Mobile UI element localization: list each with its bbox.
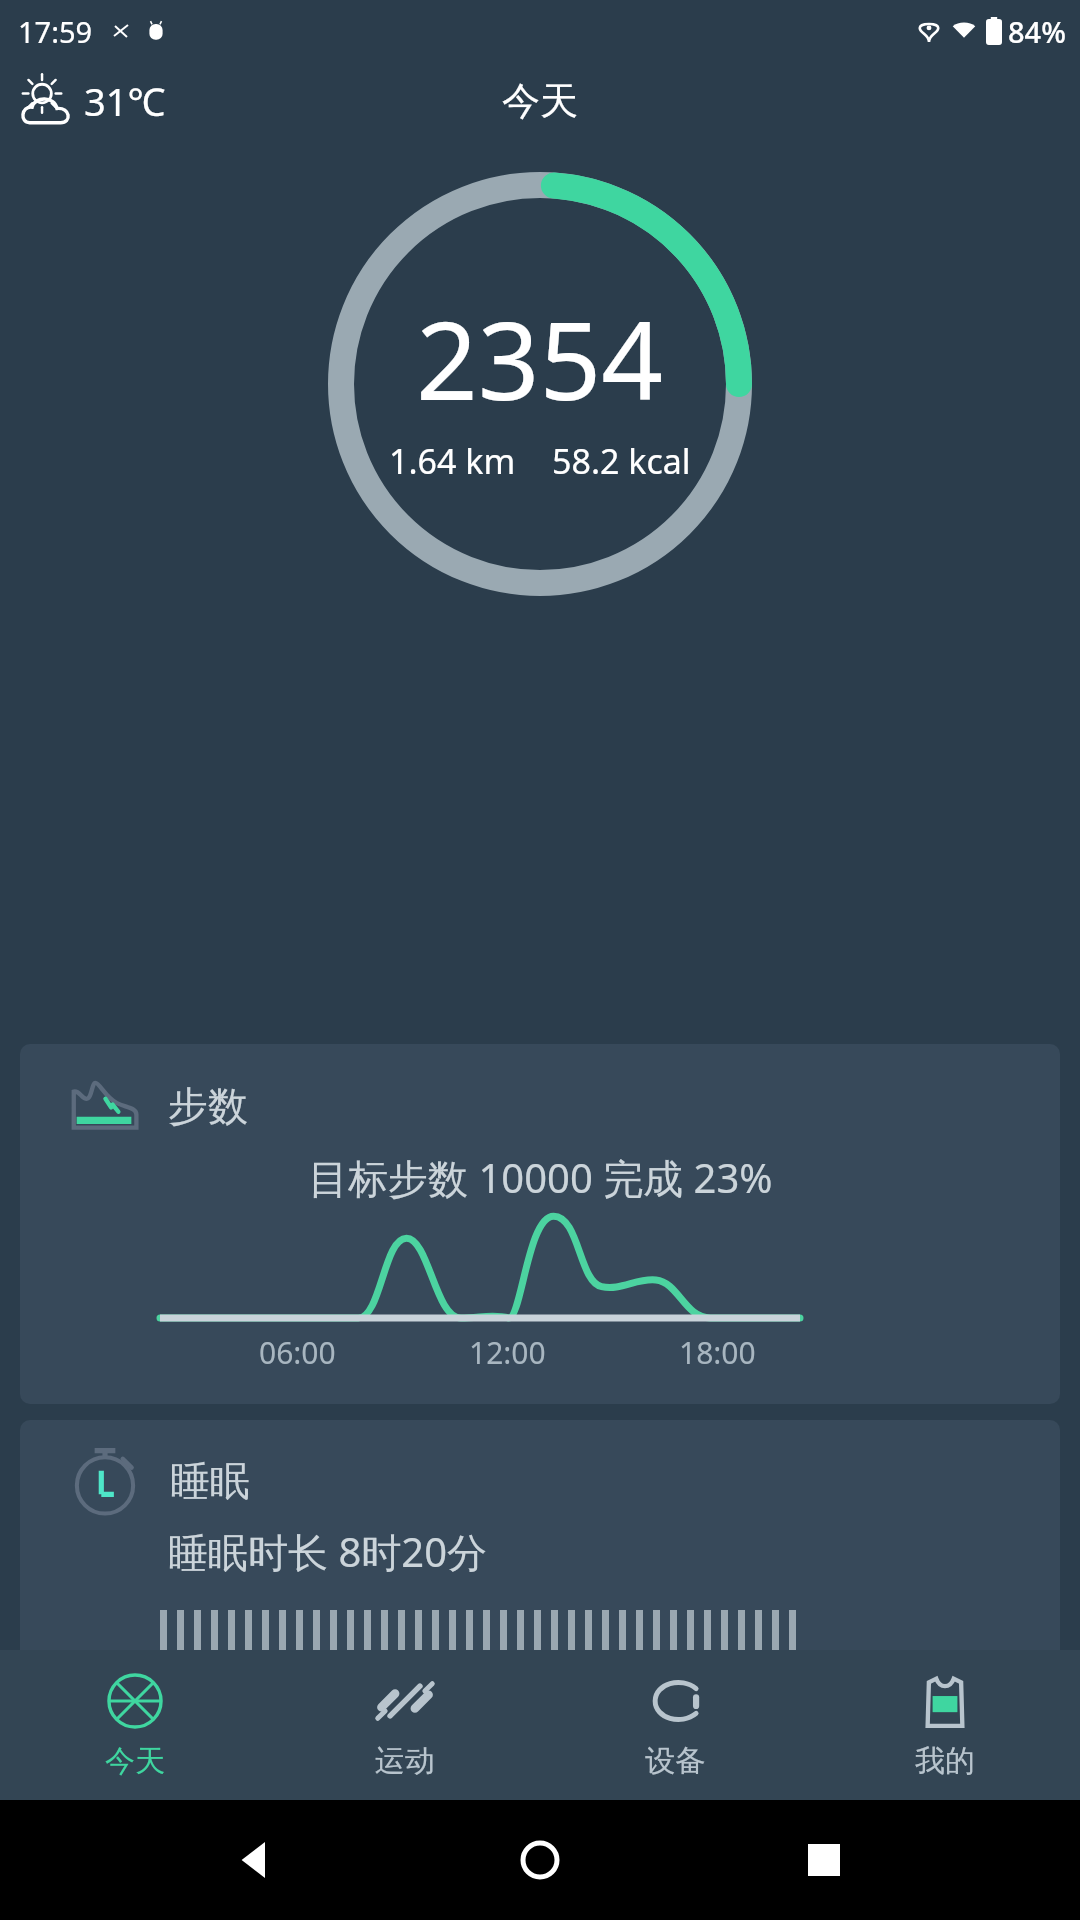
button[interactable]: 睡眠 [20,1420,1060,1650]
button[interactable]: 运动 [270,1650,540,1800]
button[interactable]: 今天 [0,1650,270,1800]
button[interactable]: Recents [796,1832,852,1888]
staticText: 31℃ [84,75,166,127]
staticText: 58.2 kcal [552,438,691,484]
staticText: 2354 [416,285,664,432]
button[interactable]: 步数 [20,1044,1060,1404]
staticText: 运动 [375,1742,435,1780]
button[interactable]: Home [512,1832,568,1888]
staticText: 17:59 [18,12,93,51]
button[interactable]: Back [228,1832,284,1888]
staticText: 睡眠 [170,1456,250,1506]
staticText: 步数 [168,1081,248,1131]
staticText: 设备 [645,1742,705,1780]
button[interactable]: 设备 [540,1650,810,1800]
staticText: 今天 [502,77,578,125]
staticText: 睡眠时长 8时20分 [168,1524,488,1579]
staticText: 今天 [105,1742,165,1780]
staticText: 18:00 [679,1332,756,1373]
button[interactable]: 我的 [810,1650,1080,1800]
staticText: 我的 [915,1742,975,1780]
staticText: 84% [1008,12,1066,51]
staticText: 目标步数 10000 完成 23% [308,1150,773,1205]
staticText: 1.64 km [389,438,516,484]
staticText: 06:00 [259,1332,336,1373]
staticText: 12:00 [469,1332,546,1373]
